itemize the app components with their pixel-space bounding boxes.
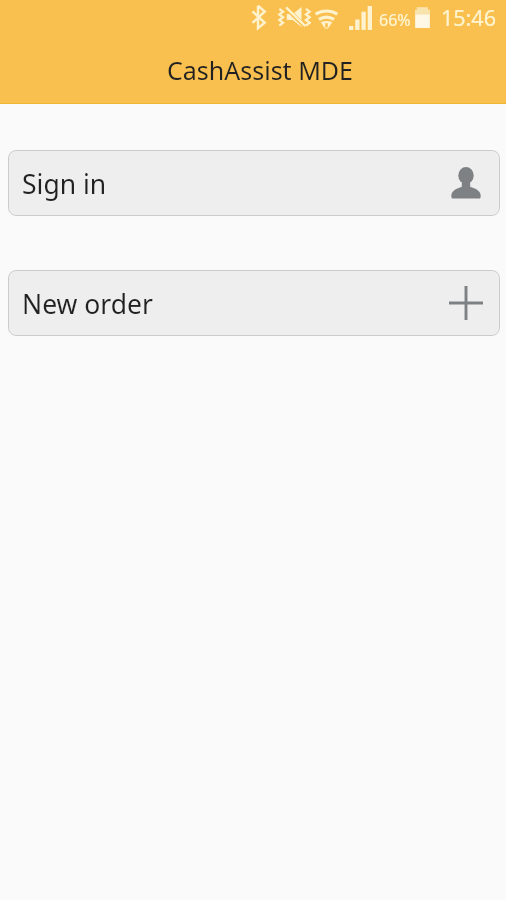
- button[interactable]: New order: [8, 270, 500, 336]
- button[interactable]: Sign in: [8, 150, 500, 216]
- staticText: Sign in: [22, 166, 107, 202]
- staticText: New order: [22, 286, 153, 322]
- staticText: 15:46: [441, 3, 496, 32]
- staticText: CashAssist MDE: [167, 53, 353, 87]
- staticText: 66%: [379, 9, 411, 31]
